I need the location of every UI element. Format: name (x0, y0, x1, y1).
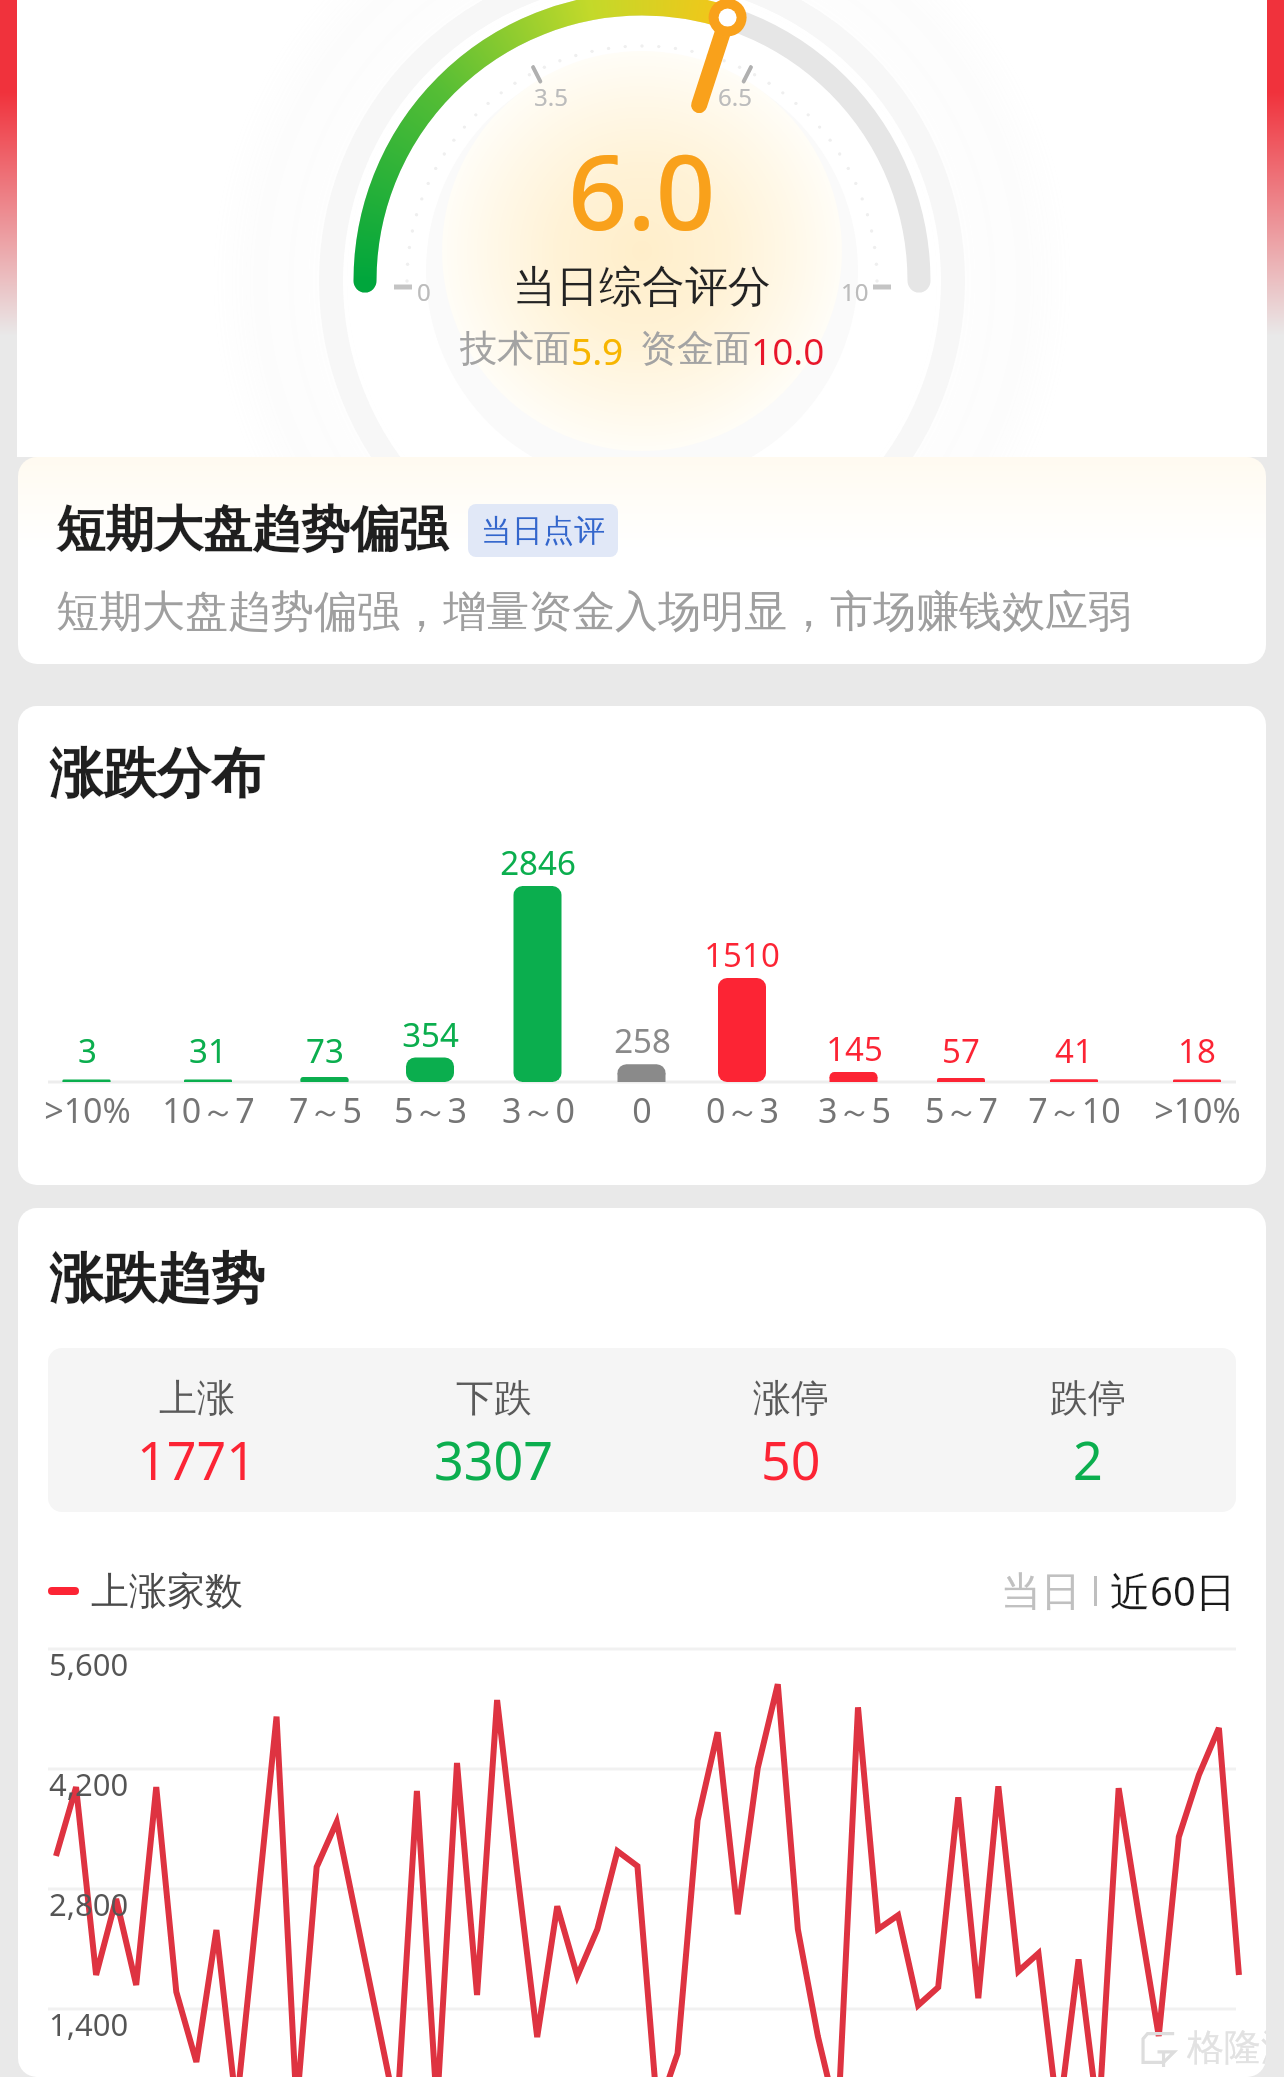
staticText: 73 (306, 1028, 344, 1073)
staticText: 技术面 (460, 325, 571, 372)
staticText: 5～3 (394, 1087, 467, 1133)
staticText: 5,600 (49, 1643, 129, 1685)
staticText: 18 (1178, 1028, 1216, 1073)
staticText: 6.0 (568, 119, 716, 261)
staticText: 0 (417, 275, 431, 308)
staticText: 涨跌分布 (49, 740, 265, 808)
staticText: 41 (1055, 1028, 1093, 1073)
staticText: 短期大盘趋势偏强，增量资金入场明显，市场赚钱效应弱 (56, 585, 1131, 639)
staticText: >10% (1154, 1087, 1241, 1133)
staticText: 57 (942, 1028, 980, 1073)
staticText: 1,400 (49, 2003, 129, 2045)
staticText: 3～5 (818, 1087, 891, 1133)
staticText: 0～3 (706, 1087, 779, 1133)
staticText: 6.5 (718, 80, 752, 113)
staticText: 下跌 (456, 1374, 532, 1422)
staticText: 2 (1073, 1424, 1103, 1495)
staticText: 跌停 (1050, 1374, 1126, 1422)
staticText: >10% (44, 1087, 131, 1133)
staticText: 3307 (434, 1424, 553, 1495)
staticText: 3～0 (502, 1087, 575, 1133)
staticText: 上涨家数 (91, 1567, 243, 1615)
staticText: 格隆汇 (1187, 2024, 1266, 2071)
button[interactable]: 短期大盘趋势偏强 (18, 457, 1266, 664)
staticText: 1510 (704, 932, 780, 977)
button[interactable]: 涨跌分布 (18, 706, 1266, 1185)
staticText: 7～10 (1028, 1087, 1121, 1133)
staticText: 5～7 (925, 1087, 998, 1133)
staticText: 近60日 (1110, 1563, 1236, 1618)
staticText: 10.0 (751, 325, 825, 375)
staticText: 涨停 (753, 1374, 829, 1422)
staticText: 涨跌趋势 (49, 1245, 265, 1313)
staticText: 上涨 (159, 1374, 235, 1422)
staticText: 短期大盘趋势偏强 (56, 499, 448, 561)
staticText: 0 (632, 1087, 652, 1133)
staticText: 258 (614, 1018, 671, 1063)
staticText: 31 (189, 1028, 227, 1073)
staticText: 当日点评 (481, 511, 605, 550)
staticText: 资金面 (640, 325, 751, 372)
staticText: 7～5 (289, 1087, 362, 1133)
staticText: 4,200 (49, 1763, 129, 1805)
staticText: 当日 (1001, 1566, 1081, 1616)
staticText: 3 (78, 1028, 97, 1073)
staticText: 10～7 (162, 1087, 255, 1133)
staticText: 3.5 (534, 80, 568, 113)
staticText: 5.9 (571, 325, 624, 375)
staticText: 145 (826, 1026, 883, 1071)
button[interactable]: 当日 (1001, 1566, 1081, 1616)
staticText: 当日综合评分 (513, 260, 771, 314)
button[interactable]: 近60日 (1110, 1563, 1236, 1618)
staticText: 10 (841, 275, 869, 308)
staticText: 2846 (500, 840, 576, 885)
staticText: 50 (761, 1424, 821, 1495)
staticText: 354 (402, 1012, 459, 1057)
staticText: 2,800 (49, 1883, 129, 1925)
staticText: 1771 (137, 1424, 256, 1495)
